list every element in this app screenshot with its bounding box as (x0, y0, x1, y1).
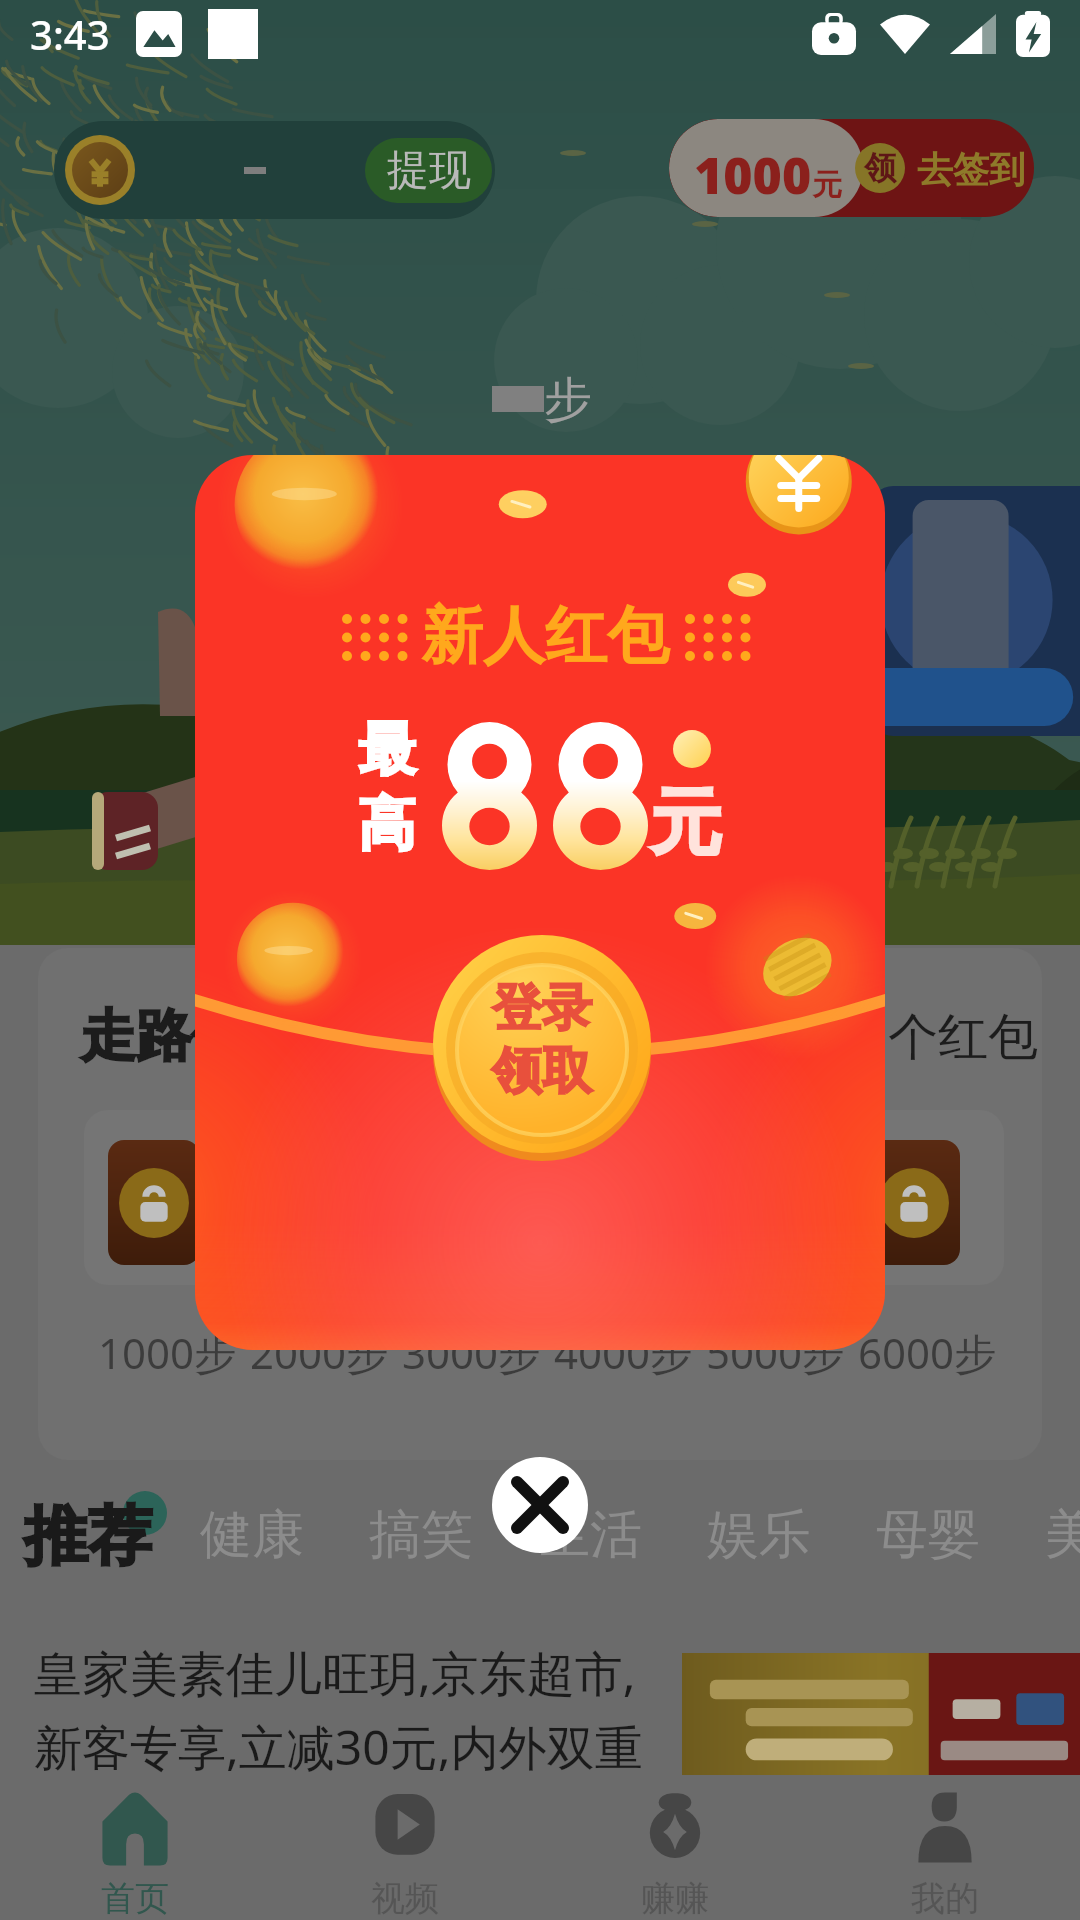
button[interactable]: Close (492, 1457, 588, 1553)
button[interactable]: 提现 (365, 138, 492, 203)
button[interactable]: 搞笑 (369, 1502, 473, 1568)
staticText: 5000步 (706, 1324, 845, 1381)
button[interactable]: 新人红包 (195, 455, 885, 1350)
staticText: 个红包 (888, 1006, 1038, 1069)
staticText: 提现 (387, 144, 471, 197)
staticText: 6000步 (858, 1324, 997, 1381)
staticText: 皇家美素佳儿旺玥,京东超市,新客专享,立减30元,内外双重 (34, 1640, 659, 1779)
staticText: 走路领红包 (80, 1001, 360, 1072)
staticText: 搞笑 (369, 1502, 473, 1568)
button[interactable]: 母婴 (876, 1502, 980, 1568)
staticText: 我的 (911, 1877, 979, 1920)
staticText: 新人红包 (421, 597, 669, 675)
staticText: 3:43 (30, 7, 110, 61)
staticText: 元 (650, 778, 722, 869)
staticText: 领 (864, 148, 896, 188)
staticText: 最 (358, 713, 416, 786)
button[interactable]: 我的 (810, 1786, 1080, 1920)
button[interactable]: 赚赚 (540, 1786, 810, 1920)
button[interactable]: 1000 (669, 119, 1034, 217)
staticText: 1000步 (98, 1324, 237, 1381)
staticText: 美 (1045, 1502, 1080, 1568)
staticText: 首页 (101, 1877, 169, 1920)
staticText: 去签到 (917, 147, 1025, 192)
button[interactable]: 皇家美素佳儿旺玥,京东超市,新客专享,立减30元,内外双重 (0, 1614, 1080, 1794)
staticText: 健康 (200, 1502, 304, 1568)
staticText: 推荐 (24, 1496, 152, 1577)
button[interactable]: 健康 (200, 1502, 304, 1568)
staticText: 娱乐 (707, 1502, 811, 1568)
staticText: 登录 (492, 977, 592, 1040)
staticText: 生活 (538, 1502, 642, 1568)
staticText: 步 (544, 370, 592, 430)
button[interactable]: 推荐 (24, 1496, 152, 1577)
staticText: 1000 (694, 141, 812, 209)
staticText: 元 (812, 166, 842, 204)
button[interactable]: 首页 (0, 1786, 270, 1920)
staticText: 赚赚 (641, 1877, 709, 1920)
staticText: 母婴 (876, 1502, 980, 1568)
staticText: 3000步 (402, 1324, 541, 1381)
button[interactable]: 视频 (270, 1786, 540, 1920)
button[interactable]: 娱乐 (707, 1502, 811, 1568)
staticText: 视频 (371, 1877, 439, 1920)
button[interactable]: 生活 (538, 1502, 642, 1568)
button[interactable]: 登录 (433, 933, 651, 1163)
button[interactable]: 美 (1045, 1502, 1080, 1568)
staticText: 领取 (492, 1040, 592, 1103)
staticText: 2000步 (250, 1324, 389, 1381)
staticText: 高 (358, 788, 416, 861)
button[interactable]: 提现 (54, 121, 495, 219)
staticText: 4000步 (554, 1324, 693, 1381)
